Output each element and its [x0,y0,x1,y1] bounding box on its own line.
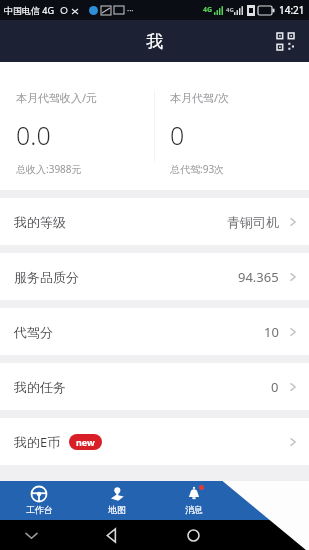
staticText: 我的任务 [14,379,66,395]
button[interactable]: Hide keyboard [18,522,44,548]
staticText: 服务品质分 [14,269,79,285]
button[interactable]: 地图 [78,481,155,520]
button[interactable]: Back [99,522,125,548]
staticText: 14:21 [279,3,305,17]
staticText: 10 [264,323,279,341]
button[interactable]: Home [180,522,206,548]
staticText: 我的E币 [14,433,61,451]
button[interactable]: 消息 [155,481,232,520]
staticText: ··· [127,5,134,16]
staticText: 我的等级 [14,214,66,230]
button[interactable]: 工作台 [0,481,78,520]
button[interactable]: 服务品质分 [0,253,309,300]
button[interactable]: 我的等级 [0,198,309,245]
staticText: 94.365 [238,268,279,286]
staticText: 代驾分 [14,324,53,340]
button[interactable]: 代驾分 [0,308,309,355]
button[interactable]: 我的E币 [0,418,309,465]
staticText: 0 [271,378,279,396]
staticText: 中国电信 4G [4,4,55,16]
staticText: 地图 [108,504,126,515]
staticText: 4G [226,6,234,14]
staticText: 0 [170,118,185,152]
staticText: 工作台 [26,504,53,515]
staticText: new [76,436,95,448]
staticText: 4G [203,5,213,15]
staticText: 我 [146,31,163,52]
staticText: 0.0 [16,118,51,152]
staticText: 本月代驾收入/元 [16,90,98,105]
staticText: 总收入:3988元 [16,162,82,176]
button[interactable]: 我的任务 [0,363,309,410]
staticText: 总代驾:93次 [170,162,225,176]
staticText: 本月代驾/次 [170,90,230,105]
button[interactable]: 扫一扫 Scan QR code [269,25,301,57]
staticText: 消息 [185,504,203,515]
staticText: 青铜司机 [227,214,279,230]
